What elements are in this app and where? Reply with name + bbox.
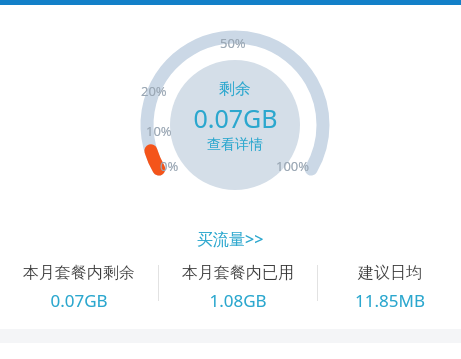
button[interactable]: 本月套餐内已用 xyxy=(159,263,317,321)
button[interactable]: 买流量>> xyxy=(0,226,461,252)
staticText: 100% xyxy=(276,157,310,175)
staticText: 10% xyxy=(146,122,172,140)
staticText: 剩余 xyxy=(219,79,251,99)
button[interactable]: 建议日均 xyxy=(318,263,461,321)
staticText: 1.08GB xyxy=(209,289,267,312)
staticText: 买流量>> xyxy=(197,228,264,250)
staticText: 20% xyxy=(141,82,167,100)
staticText: 0.07GB xyxy=(50,289,108,312)
button[interactable]: 剩余 xyxy=(170,79,300,154)
staticText: 0.07GB xyxy=(193,101,278,135)
button[interactable]: 本月套餐内剩余 xyxy=(0,263,158,321)
staticText: 查看详情 xyxy=(207,136,263,154)
staticText: 建议日均 xyxy=(358,263,422,283)
staticText: 本月套餐内已用 xyxy=(182,263,294,283)
staticText: 0% xyxy=(160,157,179,175)
staticText: 本月套餐内剩余 xyxy=(23,263,135,283)
staticText: 50% xyxy=(220,34,246,52)
staticText: 11.85MB xyxy=(355,289,425,312)
